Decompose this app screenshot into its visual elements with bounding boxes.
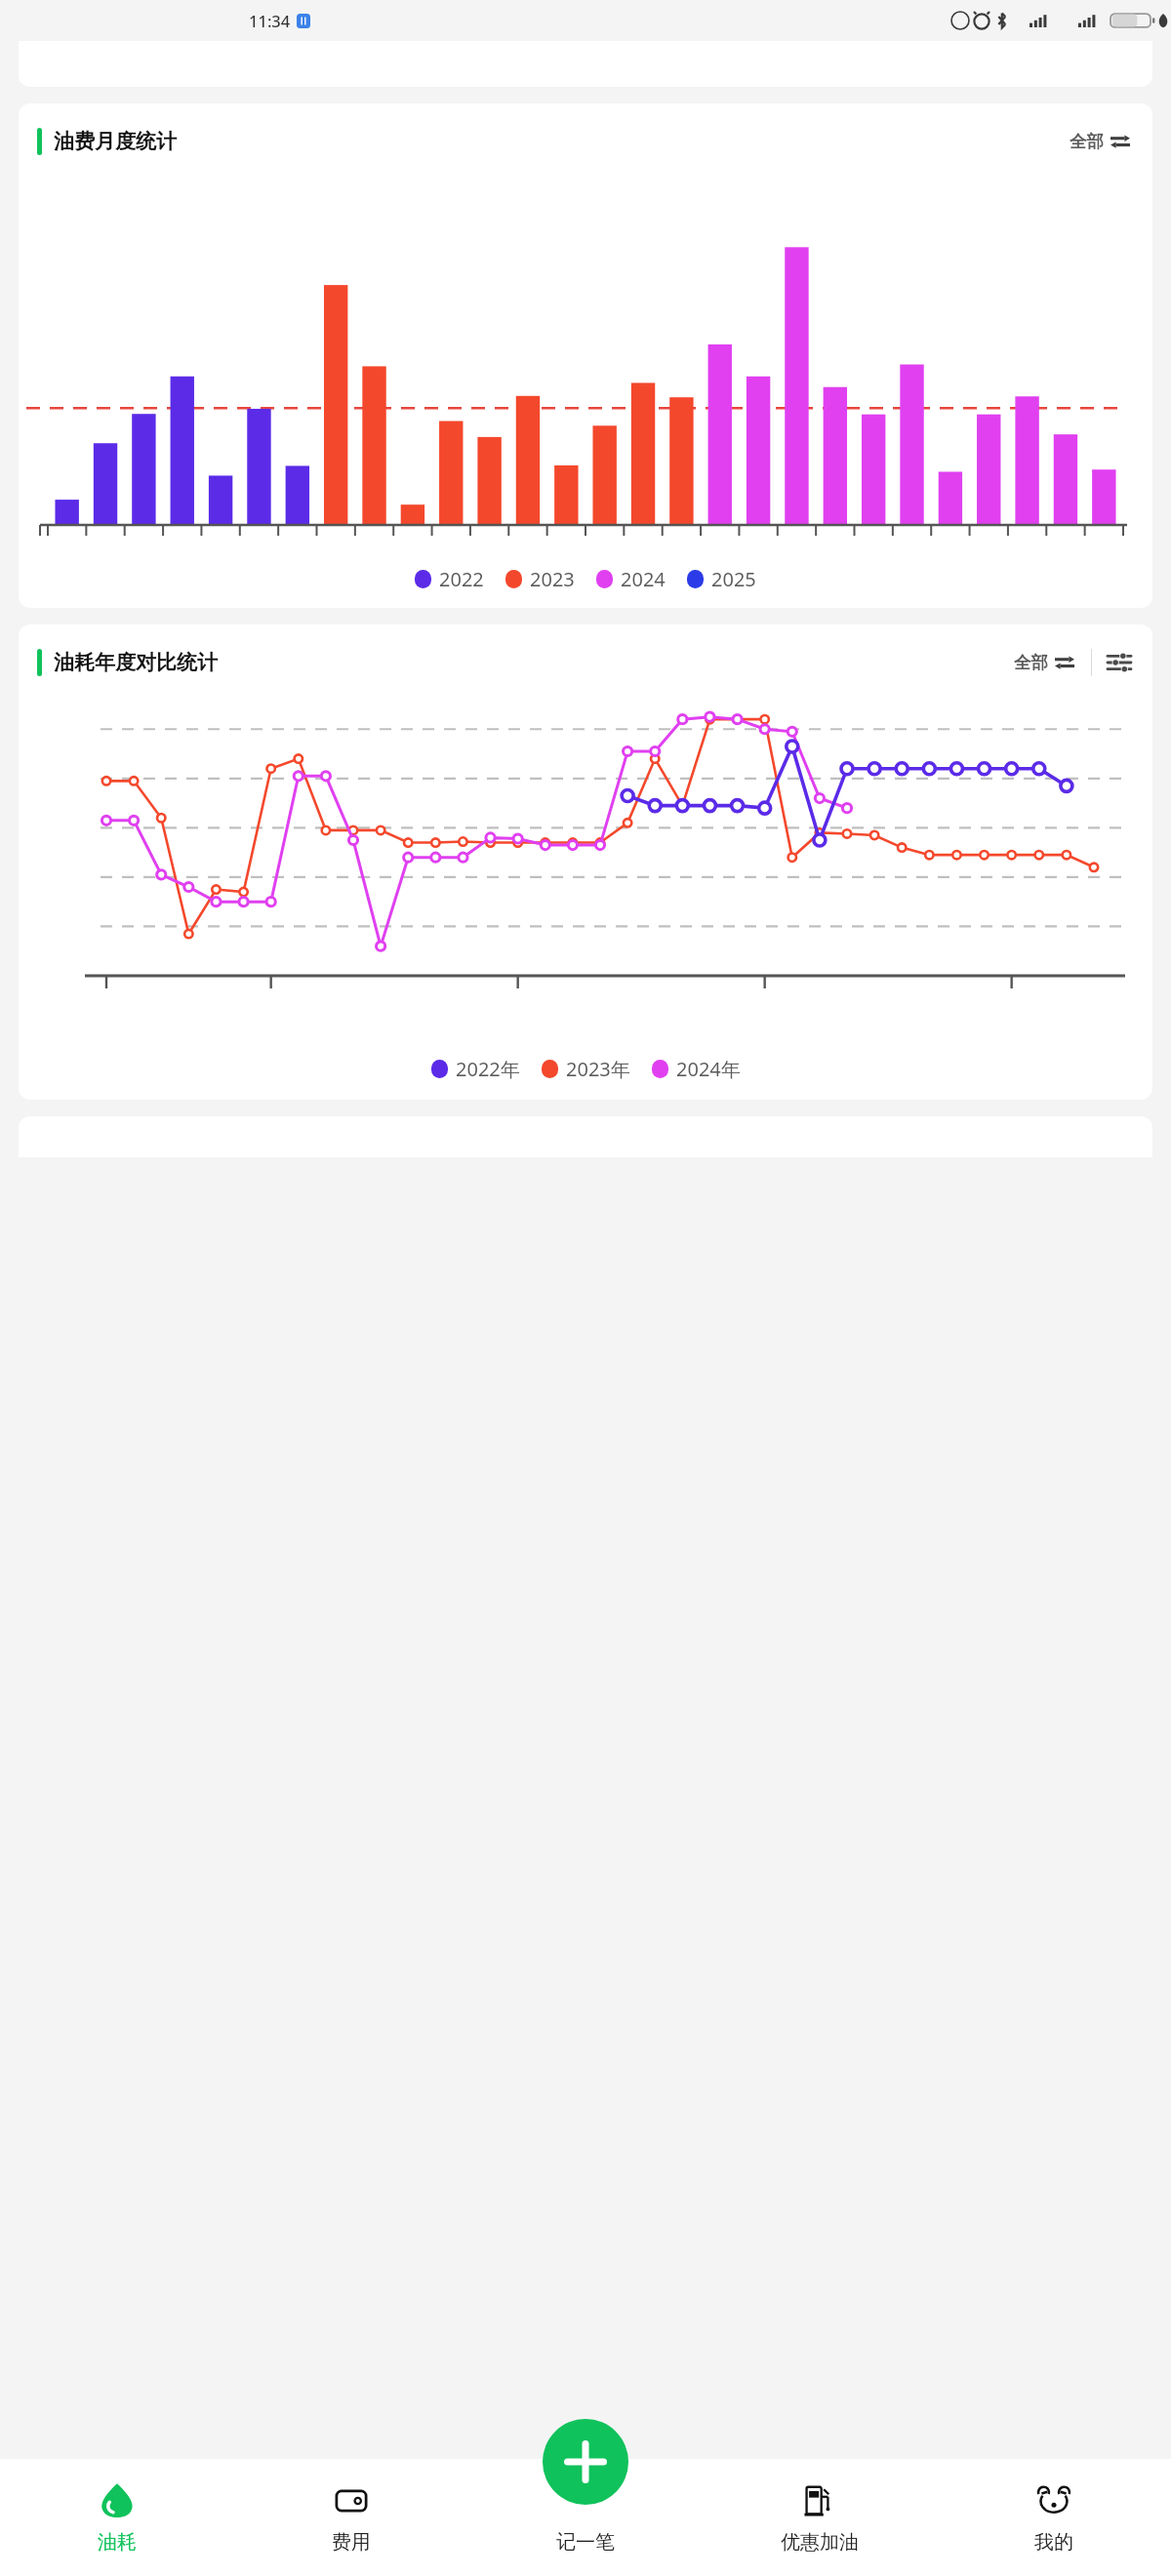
staticText: 11:34 xyxy=(249,10,291,31)
staticText: 油费月度统计 xyxy=(54,129,177,154)
button[interactable]: 油耗 xyxy=(0,2459,234,2576)
staticText: 2024年 xyxy=(676,1056,741,1082)
staticText: 全部 xyxy=(1070,131,1104,152)
staticText: 全部 xyxy=(1014,652,1048,673)
staticText: 我的 xyxy=(1034,2530,1073,2555)
staticText: 2022 xyxy=(439,566,484,592)
button[interactable]: 优惠加油 xyxy=(703,2459,937,2576)
staticText: 油耗 xyxy=(98,2530,137,2555)
staticText: 费用 xyxy=(332,2530,371,2555)
button[interactable]: Filter settings xyxy=(1105,648,1134,677)
button[interactable]: 费用 xyxy=(234,2459,468,2576)
staticText: 2025 xyxy=(711,566,756,592)
staticText: 2023年 xyxy=(566,1056,630,1082)
button[interactable]: 我的 xyxy=(937,2459,1171,2576)
button[interactable]: 全部 xyxy=(1010,648,1078,677)
button[interactable]: 全部 xyxy=(1066,127,1134,156)
staticText: 优惠加油 xyxy=(781,2530,859,2555)
staticText: 2024 xyxy=(621,566,666,592)
button[interactable]: 记一笔 xyxy=(543,2419,628,2505)
staticText: 2022年 xyxy=(456,1056,520,1082)
staticText: 油耗年度对比统计 xyxy=(54,650,218,675)
staticText: 2023 xyxy=(530,566,575,592)
staticText: 记一笔 xyxy=(556,2530,615,2555)
